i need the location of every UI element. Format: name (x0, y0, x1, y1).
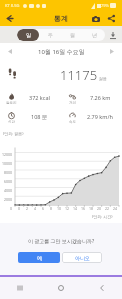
staticText: 거리 (69, 101, 76, 105)
staticText: 0 (10, 206, 13, 211)
staticText: 속도 (69, 120, 76, 124)
staticText: KT 8.5G (5, 3, 20, 8)
button[interactable]: Screenshot (88, 11, 103, 26)
staticText: 2 (26, 206, 29, 211)
staticText: 18 (89, 206, 94, 211)
staticText: 16 (81, 206, 86, 211)
staticText: 12000 (2, 152, 13, 157)
button[interactable]: Next day (104, 44, 119, 59)
staticText: 14 (73, 206, 78, 211)
staticText: 10월 16일 수요일 (38, 48, 85, 56)
staticText: 20 (97, 206, 102, 211)
staticText: 월 (70, 32, 75, 38)
staticText: 주 (48, 32, 53, 38)
staticText: 아니오 (75, 255, 90, 261)
staticText: (단위: 걸음) (3, 131, 24, 136)
staticText: 이 광고를 그만 보시겠습니까? (28, 238, 95, 245)
button[interactable]: Back (81, 277, 122, 299)
staticText: 24 (113, 206, 118, 211)
staticText: (단위: 시간) (92, 214, 113, 219)
staticText: 시간 (8, 120, 15, 124)
button[interactable]: 주 (39, 29, 61, 41)
staticText: 칼로리 (6, 101, 17, 105)
staticText: 일 (26, 32, 31, 38)
staticText: 10 (57, 206, 62, 211)
button[interactable]: Recent apps (0, 277, 40, 299)
button[interactable]: Share (104, 11, 119, 26)
button[interactable]: 예 (18, 252, 60, 263)
staticText: 6000 (4, 179, 13, 184)
button[interactable]: 월 (61, 29, 83, 41)
button[interactable]: Download (106, 28, 120, 42)
staticText: 2000 (4, 197, 13, 202)
staticText: 79% (101, 3, 109, 8)
staticText: 22 (105, 206, 110, 211)
staticText: 년 (92, 32, 97, 38)
staticText: 6 (42, 206, 45, 211)
staticText: 통계 (54, 14, 68, 23)
button[interactable]: 일 (17, 29, 39, 41)
staticText: 372 kcal (29, 94, 50, 101)
staticText: 걸음 (99, 76, 107, 81)
button[interactable]: Home (40, 277, 81, 299)
staticText: 10000 (2, 161, 13, 166)
button[interactable]: Previous day (2, 44, 17, 59)
staticText: 0 (18, 206, 21, 211)
staticText: 11175 (60, 66, 98, 84)
button[interactable]: 년 (83, 29, 105, 41)
staticText: 4 (34, 206, 37, 211)
staticText: 8000 (4, 170, 13, 175)
staticText: 8 (50, 206, 53, 211)
staticText: 예 (37, 255, 42, 261)
staticText: 12 (65, 206, 70, 211)
button[interactable]: Back (2, 11, 17, 26)
staticText: 7.26 km (90, 94, 111, 101)
staticText: 4000 (4, 188, 13, 193)
staticText: 2.79 km/h (87, 113, 113, 120)
staticText: 108 분 (31, 113, 48, 121)
button[interactable]: 아니오 (62, 252, 102, 263)
